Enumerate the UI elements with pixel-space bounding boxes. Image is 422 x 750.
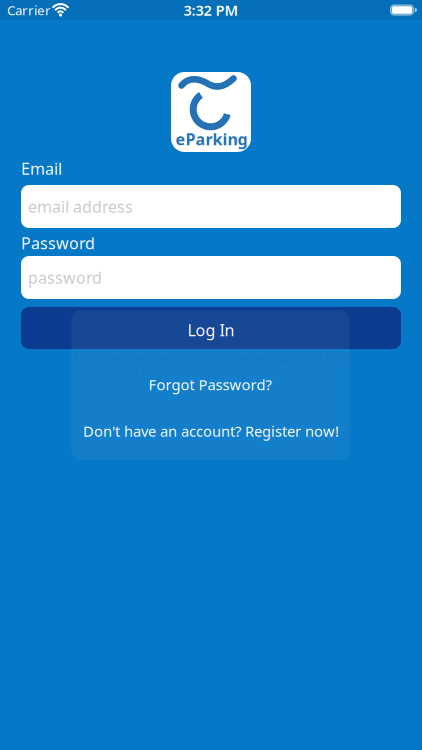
button[interactable]: Log In bbox=[21, 307, 401, 349]
staticText: password bbox=[28, 267, 102, 288]
staticText: eParking bbox=[175, 128, 247, 150]
staticText: Log In bbox=[187, 319, 234, 341]
staticText: Don't have an account? Register now! bbox=[83, 421, 339, 441]
button[interactable]: Password text field bbox=[21, 256, 401, 299]
button[interactable]: Email address text field bbox=[21, 185, 401, 228]
staticText: 3:32 PM bbox=[183, 0, 238, 20]
staticText: Password bbox=[21, 232, 95, 254]
staticText: Forgot Password? bbox=[148, 375, 271, 394]
staticText: email address bbox=[28, 196, 133, 217]
button[interactable]: Forgot Password? bbox=[148, 375, 271, 394]
staticText: Carrier bbox=[7, 1, 51, 19]
staticText: Email bbox=[21, 158, 62, 179]
button[interactable]: Don't have an account? Register now! bbox=[83, 421, 339, 441]
